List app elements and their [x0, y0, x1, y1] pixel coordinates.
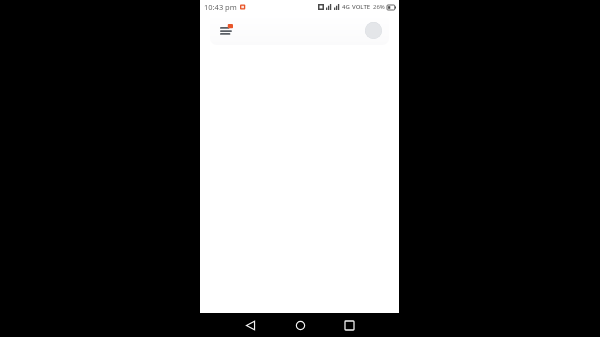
button[interactable]: Recent apps	[337, 313, 361, 337]
staticText: 4G	[342, 3, 350, 11]
button[interactable]: Back	[238, 313, 262, 337]
button[interactable]: Menu	[217, 21, 235, 39]
button[interactable]: Home	[288, 313, 312, 337]
button[interactable]: Menu	[210, 15, 389, 45]
staticText: 26%	[373, 3, 385, 11]
staticText: 10:43 pm	[204, 2, 237, 12]
staticText: VOLTE	[352, 3, 371, 11]
button[interactable]: Account	[365, 22, 382, 39]
